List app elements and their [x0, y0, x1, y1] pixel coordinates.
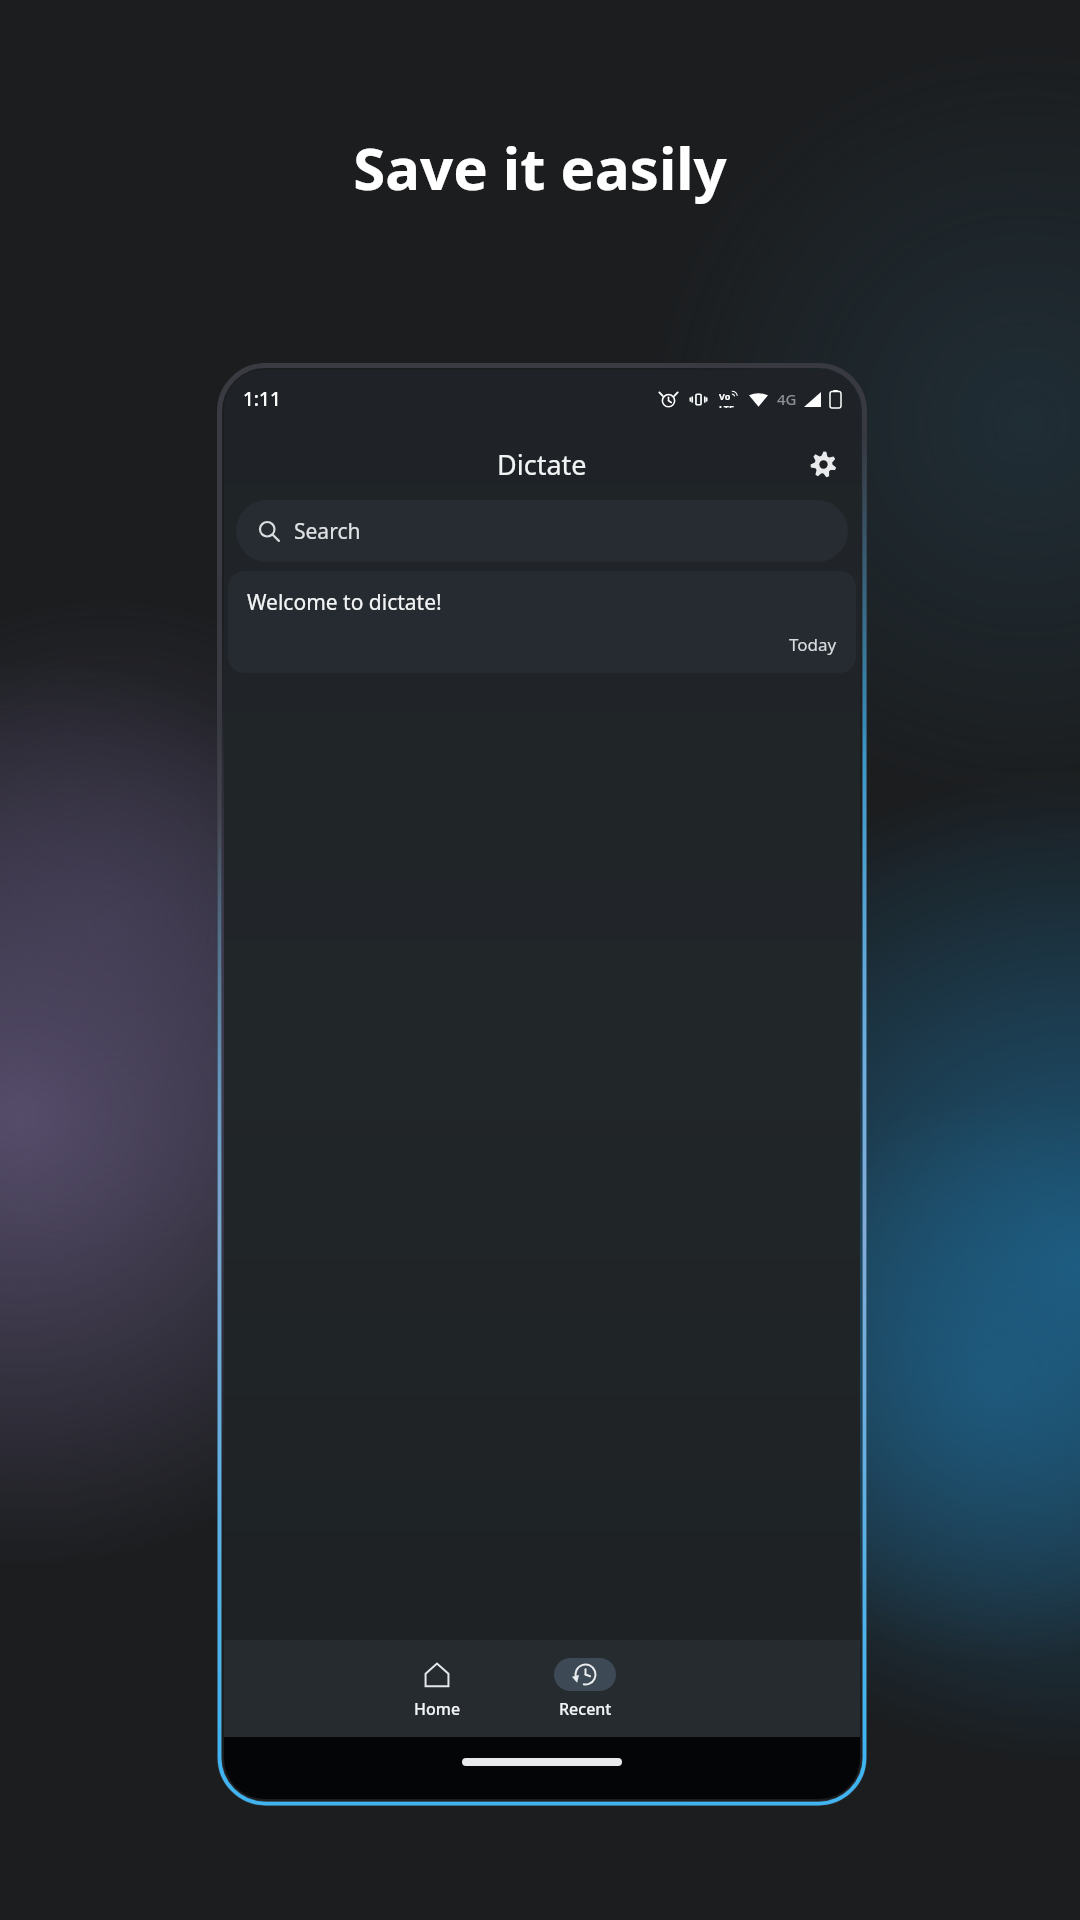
- button[interactable]: Home: [402, 1654, 472, 1724]
- staticText: Dictate: [497, 446, 587, 483]
- button[interactable]: Search: [236, 500, 848, 562]
- staticText: 1:11: [243, 386, 281, 412]
- staticText: Welcome to dictate!: [247, 588, 442, 617]
- staticText: Search: [294, 517, 361, 546]
- staticText: Today: [789, 633, 837, 656]
- staticText: 4G: [777, 389, 797, 409]
- staticText: Home: [414, 1698, 461, 1720]
- staticText: Save it easily: [353, 128, 727, 207]
- button[interactable]: Welcome to dictate!: [228, 571, 856, 673]
- button[interactable]: Recent: [550, 1654, 620, 1724]
- staticText: Recent: [559, 1698, 612, 1720]
- staticText: LTE: [719, 402, 735, 408]
- staticText: Vo: [719, 390, 731, 402]
- button[interactable]: Settings: [800, 441, 846, 487]
